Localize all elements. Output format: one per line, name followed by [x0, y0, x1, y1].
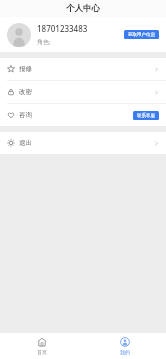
button[interactable]: 咨询 [0, 104, 166, 126]
staticText: 角色: [37, 38, 51, 46]
staticText: 报修 [19, 65, 32, 73]
staticText: 获取用户信息 [128, 32, 155, 38]
button[interactable]: 我的 [83, 333, 166, 359]
staticText: 我的 [120, 349, 130, 355]
button[interactable]: 获取用户信息 [124, 30, 159, 39]
staticText: 首页 [37, 349, 47, 355]
staticText: 个人中心 [66, 3, 100, 14]
button[interactable]: 18701233483 [0, 17, 166, 52]
button[interactable]: 首页 [0, 333, 83, 359]
staticText: 退出 [19, 139, 32, 147]
staticText: 咨询 [19, 111, 32, 119]
button[interactable]: 报修 [0, 58, 166, 80]
staticText: 18701233483 [37, 23, 88, 34]
staticText: 改密 [19, 88, 32, 96]
staticText: 联系客服 [137, 113, 155, 119]
button[interactable]: 改密 [0, 81, 166, 103]
button[interactable]: 联系客服 [133, 111, 159, 120]
button[interactable]: 退出 [0, 132, 166, 154]
